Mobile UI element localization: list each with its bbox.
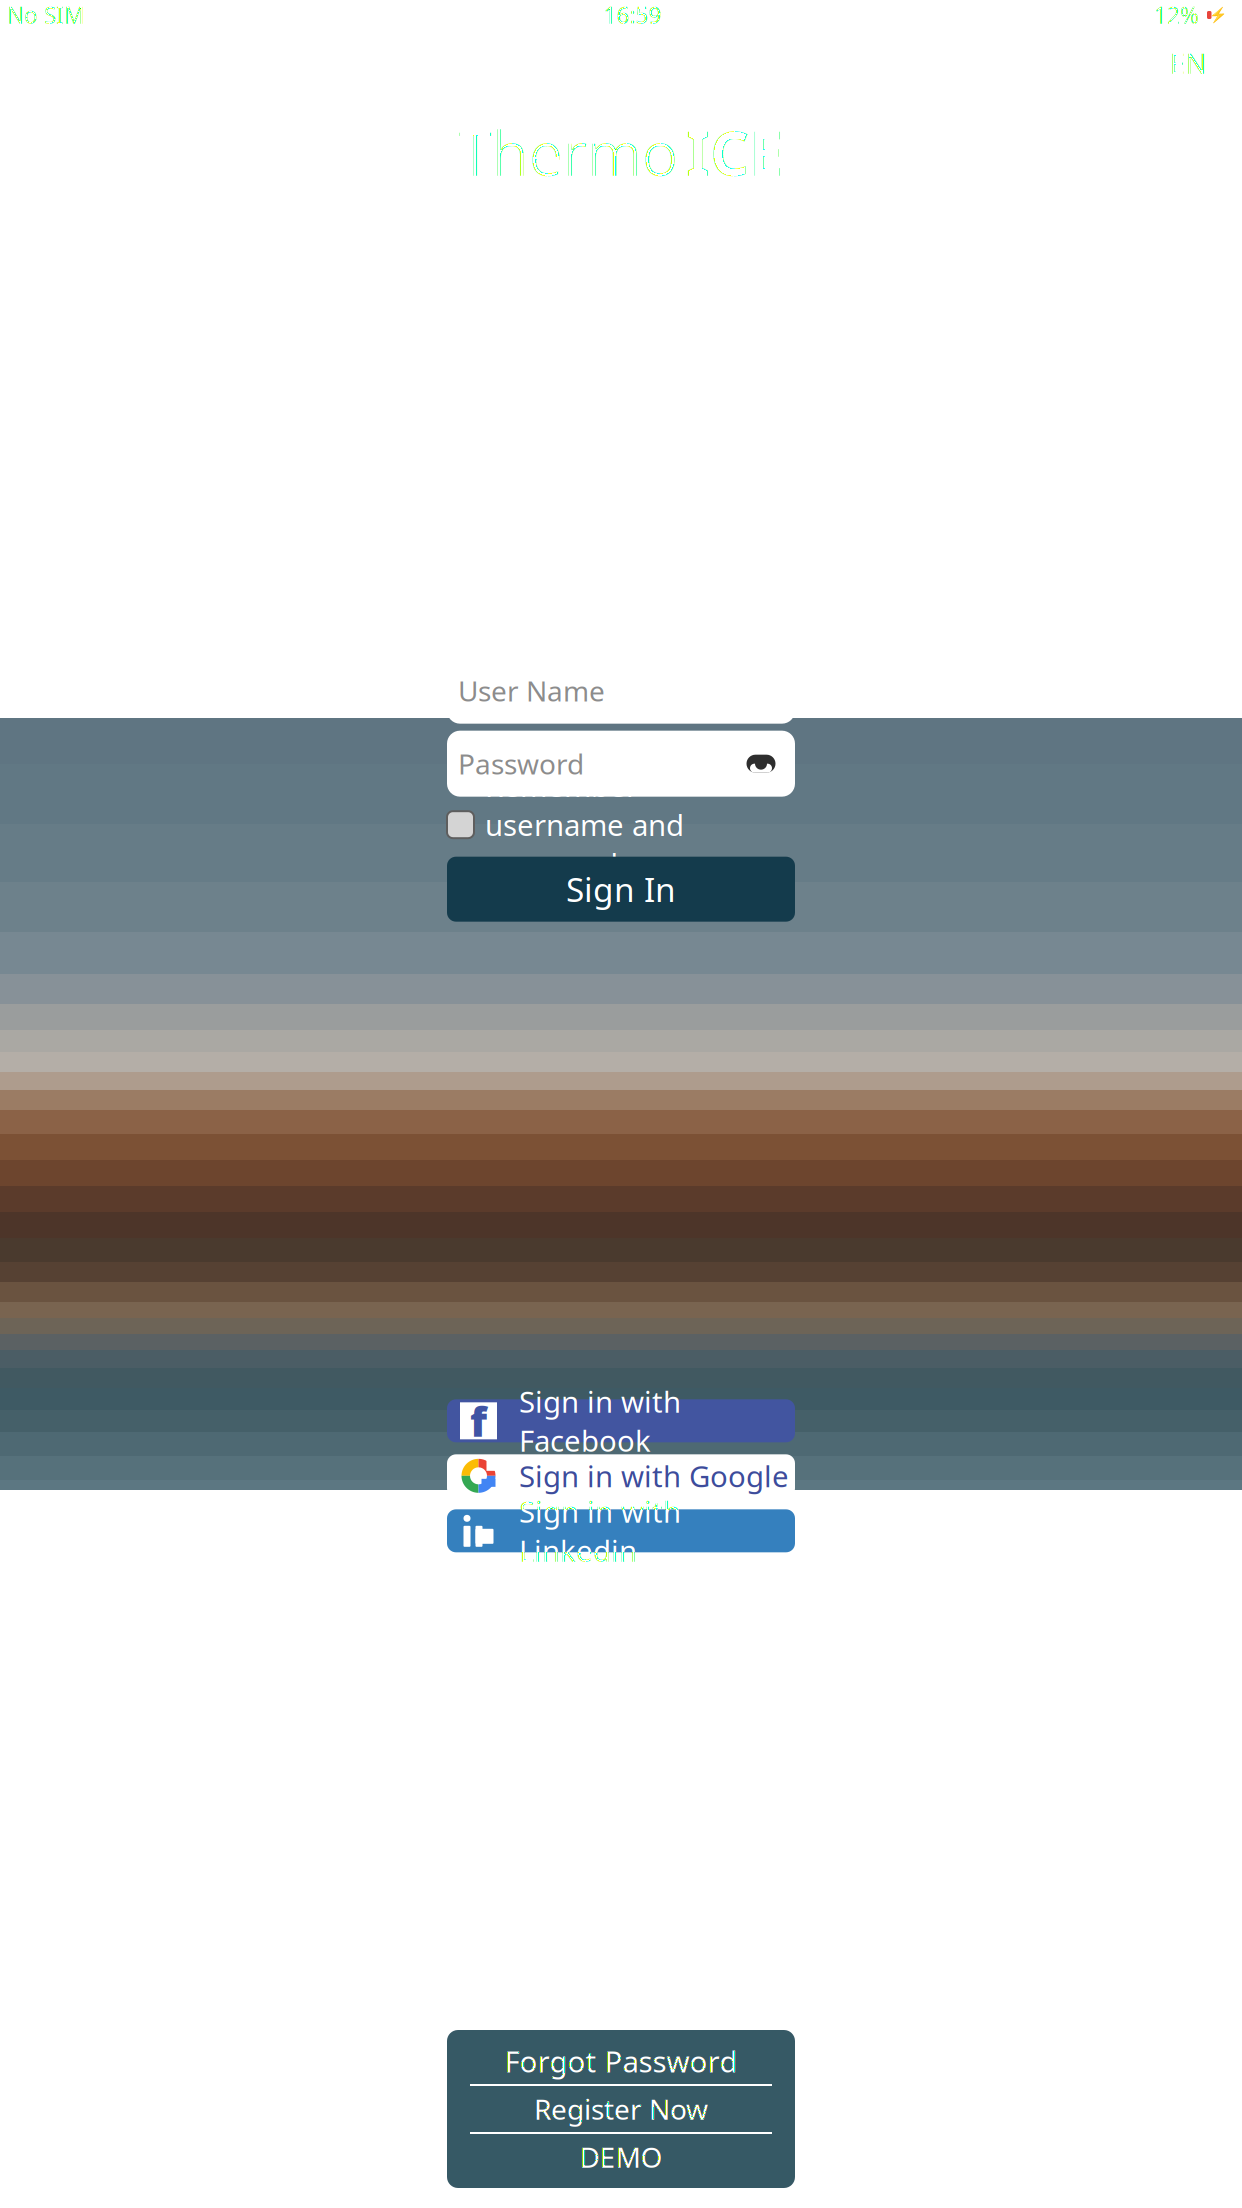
button[interactable]: Language English [1167,42,1209,84]
button[interactable]: Sign In [447,857,795,922]
button[interactable]: Sign in with Linkedin [447,1509,795,1552]
staticText: Forgot Password [504,2041,737,2080]
button[interactable]: f [447,1399,795,1442]
staticText: Thermo [459,111,678,193]
staticText: User Name [458,672,605,709]
staticText: DEMO [579,2138,662,2176]
button[interactable]: Register Now [447,2086,795,2132]
staticText: ⚡ [1208,7,1226,23]
button[interactable]: Remember username and password [447,803,795,847]
staticText: EN [1169,44,1206,82]
staticText: Sign in with Google [519,1456,789,1495]
staticText: 16:59 [603,0,661,30]
staticText: Sign In [566,867,676,911]
staticText: Remember username and password [485,766,684,883]
staticText: Sign in with Facebook [519,1382,681,1460]
staticText: Password [458,745,584,782]
staticText: Sign in with Linkedin [519,1492,681,1570]
staticText: f [470,1393,487,1448]
button[interactable]: Sign in with Google [447,1454,795,1497]
button[interactable]: DEMO [447,2134,795,2180]
staticText: Register Now [534,2090,708,2128]
staticText: No SIM [7,0,85,30]
button[interactable]: Show password [738,746,784,782]
button[interactable]: Forgot Password [447,2038,795,2084]
staticText: 12% [1154,0,1199,30]
staticText: ICE [686,111,783,193]
